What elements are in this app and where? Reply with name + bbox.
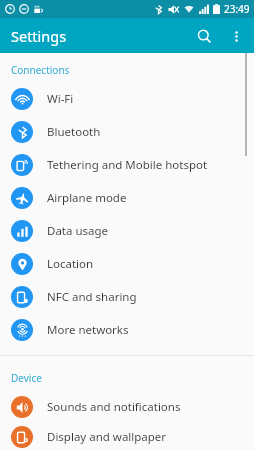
button[interactable]: More networks (0, 313, 254, 346)
staticText: More networks (47, 322, 129, 338)
staticText: Data usage (47, 223, 109, 239)
staticText: Location (47, 256, 94, 272)
button[interactable]: Display and wallpaper (0, 423, 254, 450)
staticText: 23:49 (224, 2, 250, 16)
button[interactable]: Bluetooth (0, 115, 254, 148)
staticText: Airplane mode (47, 190, 127, 206)
button[interactable]: Search (187, 19, 221, 53)
staticText: Wi-Fi (47, 91, 74, 107)
staticText: Sounds and notifications (47, 399, 181, 415)
button[interactable]: Location (0, 247, 254, 280)
button[interactable]: Sounds and notifications (0, 390, 254, 423)
staticText: Settings (11, 26, 67, 46)
button[interactable]: NFC and sharing (0, 280, 254, 313)
staticText: Device (11, 371, 42, 385)
button[interactable]: Tethering and Mobile hotspot (0, 148, 254, 181)
staticText: Connections (11, 63, 70, 77)
button[interactable]: More options (221, 21, 251, 51)
staticText: Display and wallpaper (47, 429, 167, 445)
staticText: Bluetooth (47, 124, 101, 140)
button[interactable]: Wi-Fi (0, 82, 254, 115)
button[interactable]: Airplane mode (0, 181, 254, 214)
staticText: Tethering and Mobile hotspot (47, 157, 208, 173)
staticText: NFC and sharing (47, 289, 137, 305)
button[interactable]: Data usage (0, 214, 254, 247)
